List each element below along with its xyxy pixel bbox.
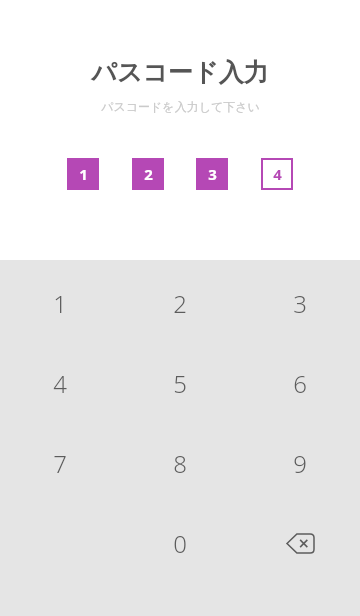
button[interactable]: Backspace — [240, 503, 360, 583]
staticText: 0 — [173, 527, 187, 560]
staticText: 5 — [173, 367, 187, 400]
staticText: 6 — [293, 367, 307, 400]
button[interactable]: 4 — [261, 158, 293, 190]
staticText: パスコードを入力して下さい — [101, 99, 260, 114]
staticText: 7 — [53, 447, 67, 480]
button[interactable]: 7 — [0, 423, 120, 503]
button[interactable]: 0 — [120, 503, 240, 583]
staticText: 1 — [79, 164, 88, 184]
staticText: 4 — [53, 367, 67, 400]
staticText: 9 — [293, 447, 307, 480]
button[interactable]: 3 — [240, 263, 360, 343]
button[interactable]: 9 — [240, 423, 360, 503]
button[interactable]: 6 — [240, 343, 360, 423]
staticText: 3 — [208, 164, 217, 184]
staticText: パスコード入力 — [91, 57, 269, 88]
staticText: 2 — [173, 287, 187, 320]
button[interactable]: 1 — [67, 158, 99, 190]
button[interactable]: 8 — [120, 423, 240, 503]
staticText: 3 — [293, 287, 307, 320]
staticText: 4 — [273, 164, 282, 184]
staticText: 2 — [144, 164, 153, 184]
staticText: 8 — [173, 447, 187, 480]
button[interactable]: 1 — [0, 263, 120, 343]
button[interactable]: 4 — [0, 343, 120, 423]
button[interactable]: 2 — [120, 263, 240, 343]
button[interactable]: 2 — [132, 158, 164, 190]
button[interactable]: 5 — [120, 343, 240, 423]
button[interactable]: 3 — [196, 158, 228, 190]
staticText: 1 — [53, 287, 67, 320]
